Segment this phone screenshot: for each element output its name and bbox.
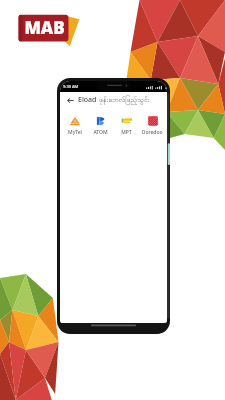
staticText: Eload bbox=[78, 95, 97, 105]
button[interactable]: ATOM bbox=[87, 112, 113, 138]
staticText: MAB bbox=[24, 16, 65, 39]
button[interactable]: MyTel bbox=[62, 112, 87, 138]
staticText: 9:30 AM bbox=[63, 84, 79, 89]
staticText: ATOM bbox=[93, 129, 108, 136]
staticText: MPT bbox=[121, 129, 132, 136]
staticText: MyTel bbox=[68, 129, 82, 136]
button[interactable]: Back bbox=[64, 94, 76, 106]
staticText: ဖုန်းဘေလ်ဖြည့်သွင်း bbox=[99, 95, 150, 105]
other: MAB Mobile Bank logo bbox=[16, 11, 80, 49]
staticText: Ooredoo bbox=[141, 129, 163, 136]
button[interactable]: Ooredoo bbox=[139, 112, 165, 138]
button[interactable]: MPT bbox=[113, 112, 139, 138]
